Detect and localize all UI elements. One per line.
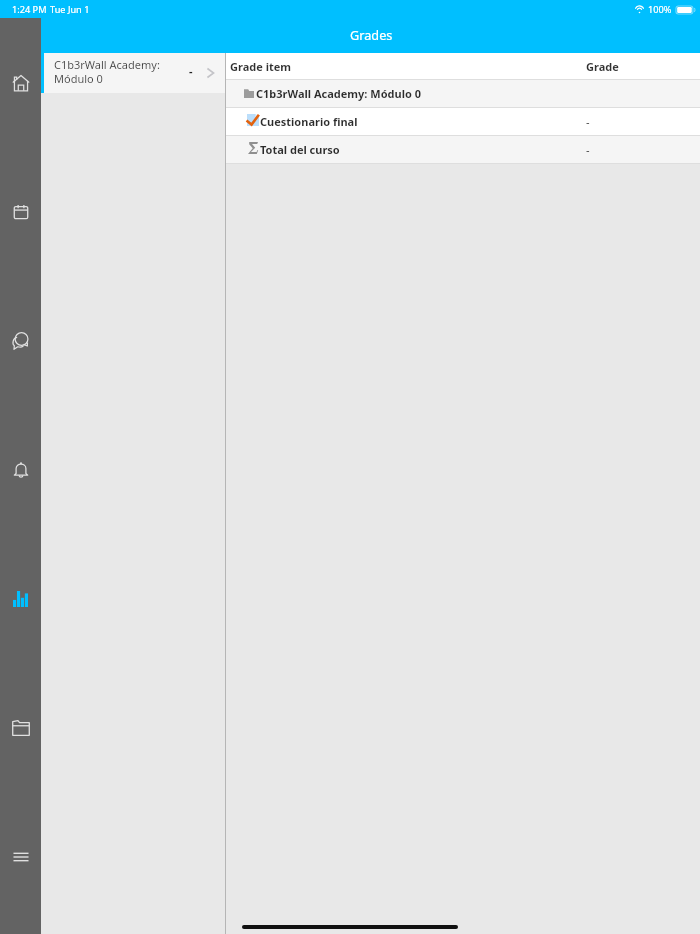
button[interactable]: Calendar [0,197,41,227]
button[interactable]: Messages [0,326,41,356]
staticText: - [586,142,590,157]
staticText: Grade item [230,59,291,74]
staticText: Grades [350,26,393,43]
staticText: 100% [648,3,672,16]
staticText: Cuestionario final [260,114,358,129]
button[interactable]: C1b3rWall Academy: Módulo 0 [226,80,700,107]
button[interactable]: Menu [0,842,41,872]
staticText: Tue Jun 1 [50,3,90,16]
button[interactable]: Cuestionario final [226,108,700,135]
staticText: - [189,63,193,78]
button[interactable]: Site home [0,68,41,98]
staticText: C1b3rWall Academy: Módulo 0 [54,57,160,86]
button[interactable]: Total del curso [226,136,700,163]
staticText: - [586,114,590,129]
button[interactable]: Private files [0,713,41,743]
staticText: C1b3rWall Academy: Módulo 0 [256,86,421,101]
button[interactable]: C1b3rWall Academy: Módulo 0 [41,53,225,93]
staticText: 1:24 PM [12,3,47,16]
staticText: Total del curso [260,142,340,157]
button[interactable]: Notifications [0,455,41,485]
button[interactable]: Grades [0,584,41,614]
staticText: Grade [586,59,619,74]
